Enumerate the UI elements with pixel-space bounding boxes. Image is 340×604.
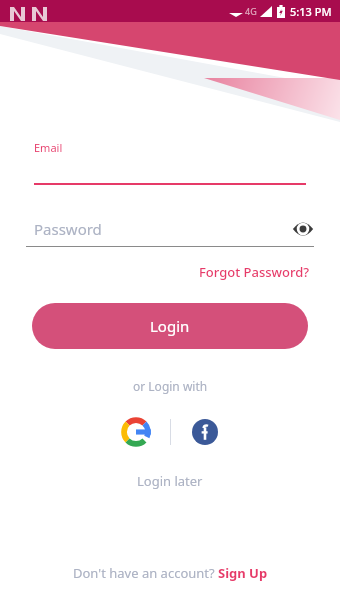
button[interactable]: Forgot Password?: [199, 263, 310, 281]
button[interactable]: Email: [34, 140, 306, 185]
button[interactable]: Password: [26, 218, 314, 247]
staticText: Email: [34, 140, 63, 155]
staticText: 5:13 PM: [290, 4, 332, 19]
staticText: Login: [150, 316, 190, 336]
staticText: Forgot Password?: [199, 263, 310, 281]
button[interactable]: Don't have an account? Sign Up: [73, 564, 268, 582]
button[interactable]: Sign in with Google: [116, 412, 156, 452]
staticText: Password: [34, 219, 102, 239]
button[interactable]: Login later: [137, 472, 203, 490]
button[interactable]: Sign in with Facebook: [185, 412, 225, 452]
button[interactable]: Login: [32, 303, 308, 349]
staticText: Don't have an account? Sign Up: [73, 564, 268, 582]
staticText: Login later: [137, 472, 203, 490]
staticText: or Login with: [133, 378, 208, 394]
staticText: 4G: [245, 5, 257, 17]
